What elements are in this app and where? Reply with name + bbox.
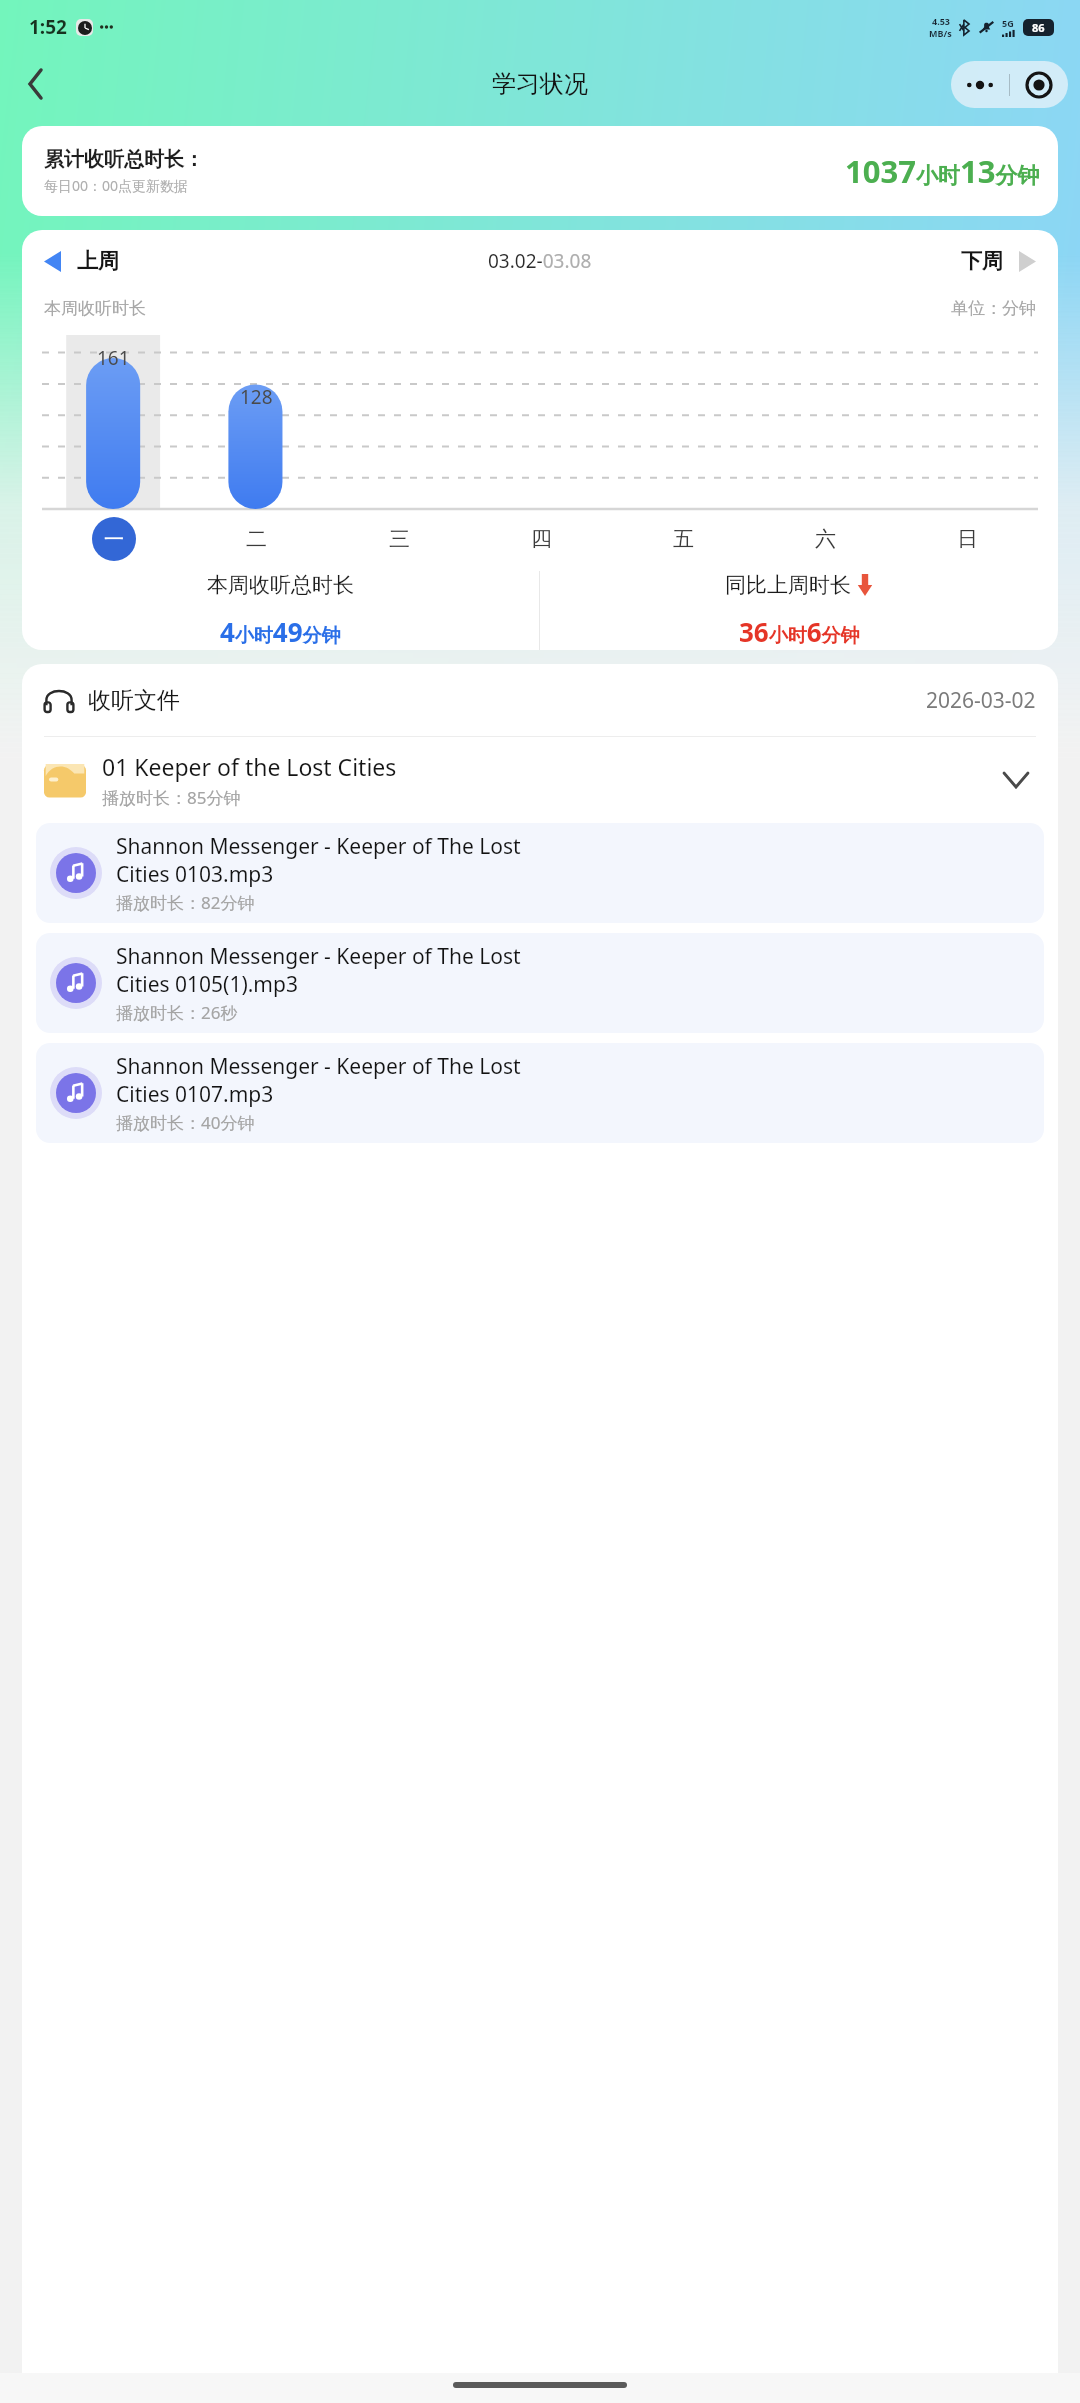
button[interactable]: Close [1010,61,1068,108]
button[interactable]: 四 [470,511,612,567]
staticText: 三 [389,526,410,552]
staticText: 本周收听时长 [44,298,146,319]
staticText: 01 Keeper of the Lost Cities [102,751,397,782]
button[interactable]: 上周 [44,248,119,274]
staticText: 六 [815,526,836,552]
button[interactable]: Back [10,58,62,110]
button[interactable]: 本周收听总时长 [22,572,539,649]
staticText: 一 [104,527,124,552]
staticText: 4.53 [932,15,950,27]
staticText: 播放时长：85分钟 [102,786,241,809]
staticText: 4小时49分钟 [220,614,341,649]
staticText: 1:52 [29,14,67,40]
staticText: Shannon Messenger - Keeper of The Lost C… [116,1052,521,1108]
button[interactable]: 六 [754,511,896,567]
staticText: 下周 [961,248,1003,274]
button[interactable]: Shannon Messenger - Keeper of The Lost C… [36,1043,1044,1143]
button[interactable]: 01 Keeper of the Lost Cities [22,737,1058,823]
staticText: 收听文件 [88,686,180,715]
button[interactable]: 五 [612,511,754,567]
button[interactable]: 下周 [961,248,1036,274]
staticText: 二 [246,526,267,552]
staticText: 播放时长：26秒 [116,1001,238,1024]
staticText: 2026-03-02 [926,686,1036,715]
staticText: 日 [957,526,978,552]
staticText: 1037小时13分钟 [845,150,1040,192]
button[interactable]: Shannon Messenger - Keeper of The Lost C… [36,933,1044,1033]
staticText: 学习状况 [492,69,588,99]
staticText: 播放时长：82分钟 [116,891,255,914]
staticText: 上周 [77,248,119,274]
staticText: 本周收听总时长 [207,572,354,598]
staticText: Shannon Messenger - Keeper of The Lost C… [116,942,521,998]
button[interactable]: 同比上周时长 [540,572,1058,649]
button[interactable]: 累计收听总时长： [22,126,1058,216]
staticText: 86 [1032,20,1045,35]
staticText: 播放时长：40分钟 [116,1111,255,1134]
staticText: 五 [673,526,694,552]
button[interactable]: 日 [896,511,1038,567]
staticText: 每日00：00点更新数据 [44,176,189,195]
staticText: 四 [531,526,552,552]
staticText: 161 [97,345,130,371]
button[interactable]: More options [951,61,1009,108]
staticText: 累计收听总时长： [44,147,204,172]
button[interactable]: 一 [42,511,185,567]
staticText: 5G [1002,17,1014,29]
staticText: 03.02-03.08 [488,248,592,274]
staticText: 128 [240,384,273,410]
button[interactable]: Expand [996,760,1036,800]
staticText: Shannon Messenger - Keeper of The Lost C… [116,832,521,888]
button[interactable]: 三 [328,511,470,567]
button[interactable]: Shannon Messenger - Keeper of The Lost C… [36,823,1044,923]
staticText: 单位：分钟 [951,298,1036,319]
button[interactable]: 二 [185,511,328,567]
staticText: 同比上周时长 [725,572,851,598]
staticText: MB/s [929,27,952,39]
staticText: 36小时6分钟 [739,614,860,649]
